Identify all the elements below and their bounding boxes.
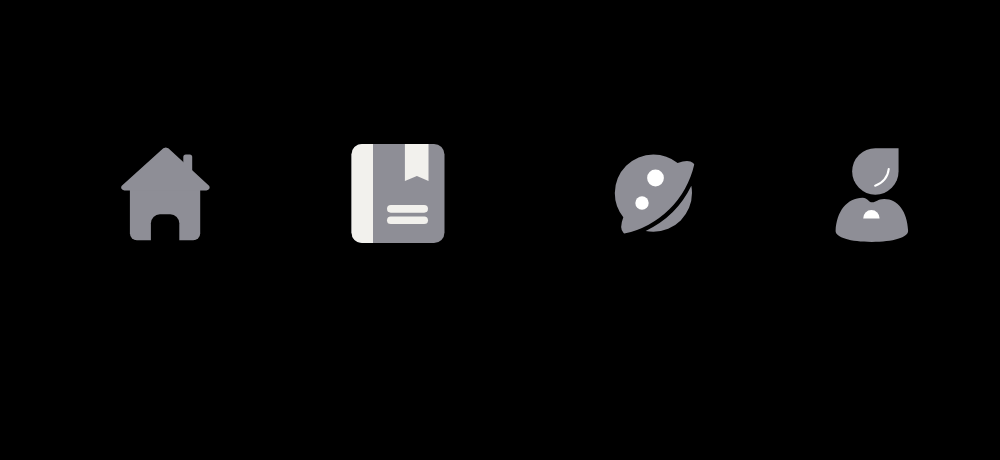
button[interactable]: Home	[86, 113, 246, 273]
button[interactable]: Profile	[792, 115, 952, 275]
button[interactable]: Explore	[575, 115, 735, 275]
button[interactable]: Library	[318, 111, 478, 271]
